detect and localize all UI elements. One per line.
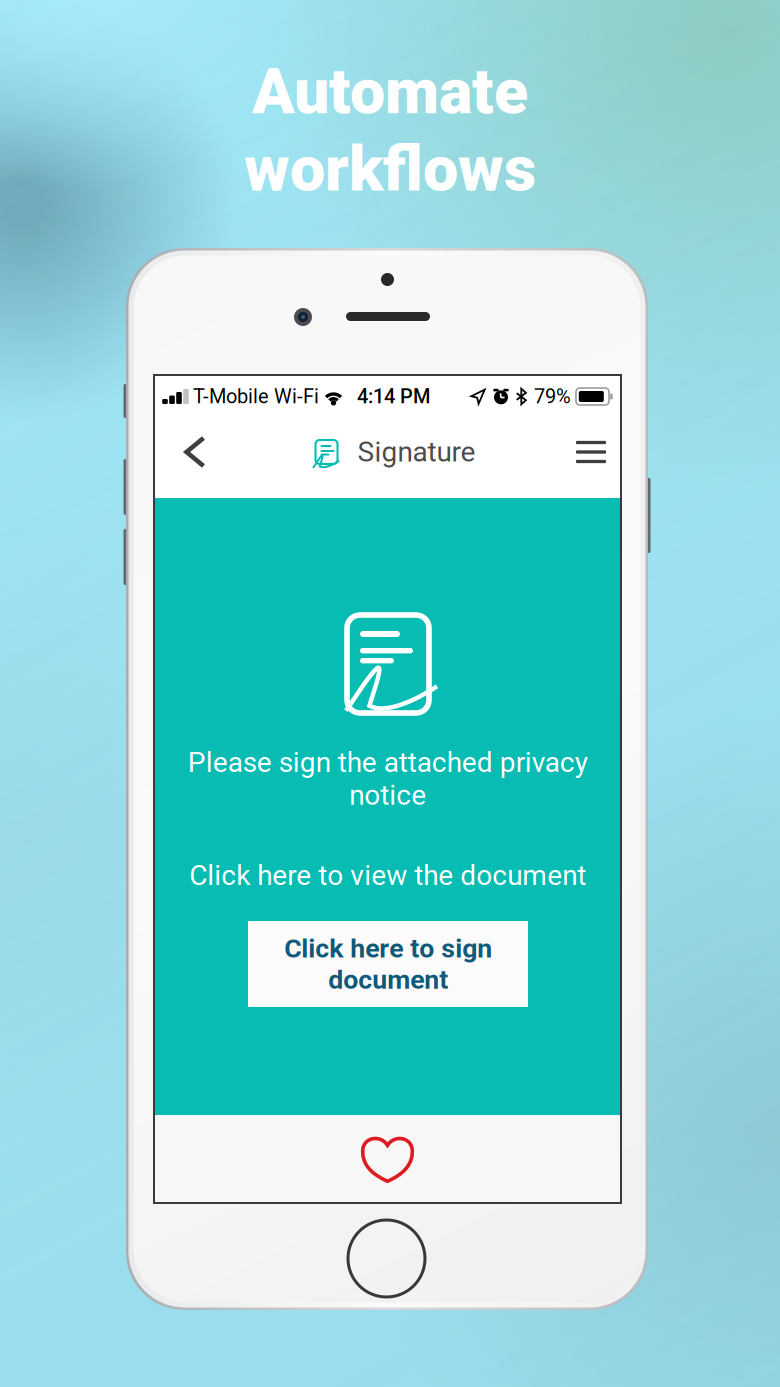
button[interactable]: Click here to sign document [248, 921, 528, 1007]
button[interactable]: Back [158, 418, 232, 486]
staticText: Click here to view the document [189, 859, 586, 892]
staticText: workflows [244, 132, 536, 206]
staticText: Signature [357, 436, 475, 468]
staticText: 79% [534, 385, 571, 408]
staticText: T-Mobile Wi-Fi [193, 385, 319, 408]
button[interactable]: Menu [554, 418, 628, 486]
staticText: Please sign the attached privacy notice [187, 746, 587, 812]
staticText: Click here to sign document [284, 933, 492, 995]
button[interactable]: Favorite [154, 1115, 621, 1203]
staticText: 4:14 PM [357, 385, 430, 408]
staticText: Automate [252, 55, 528, 128]
